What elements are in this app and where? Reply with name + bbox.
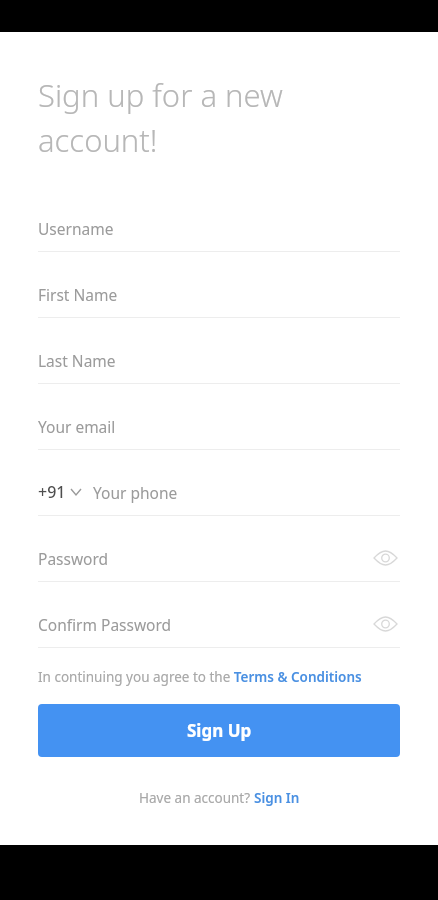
button[interactable]: Confirm Password <box>38 601 400 648</box>
button[interactable]: Password <box>38 535 400 582</box>
staticText: Password <box>38 548 109 569</box>
button[interactable]: Sign Up <box>38 704 400 757</box>
button[interactable]: +91 <box>38 481 93 503</box>
staticText: +91 <box>38 481 66 503</box>
staticText: Username <box>38 218 114 239</box>
button[interactable]: Your email <box>38 403 400 450</box>
button[interactable]: In continuing you agree to the Terms & C… <box>38 668 362 686</box>
button[interactable]: +91 <box>38 469 400 516</box>
staticText: Confirm Password <box>38 614 172 635</box>
staticText: Your email <box>38 416 116 437</box>
staticText: Your phone <box>93 482 178 503</box>
staticText: First Name <box>38 284 118 305</box>
button[interactable]: Username <box>38 205 400 252</box>
button[interactable]: Show confirm password <box>370 609 400 639</box>
staticText: Last Name <box>38 350 116 371</box>
staticText: Sign up for a new account! <box>38 74 283 161</box>
button[interactable]: First Name <box>38 271 400 318</box>
staticText: Have an account? <box>139 789 254 807</box>
staticText: Sign Up <box>187 719 252 742</box>
button[interactable]: Show password <box>370 543 400 573</box>
button[interactable]: Last Name <box>38 337 400 384</box>
staticText: Sign In <box>254 789 300 807</box>
button[interactable]: Have an account? <box>139 789 300 807</box>
